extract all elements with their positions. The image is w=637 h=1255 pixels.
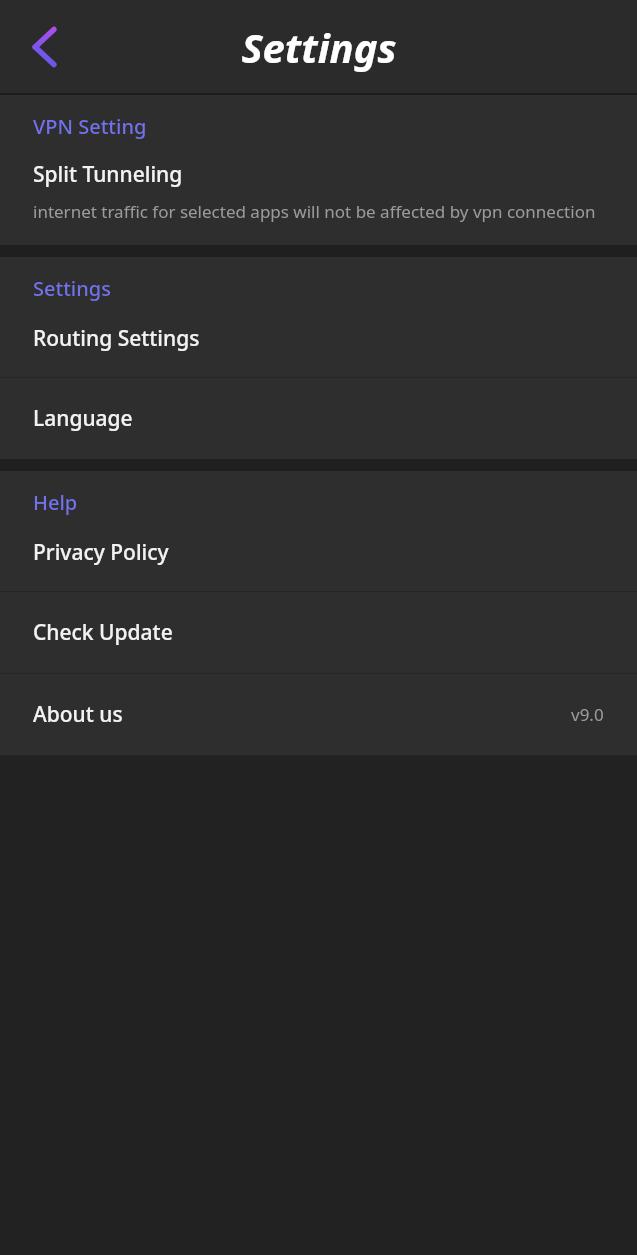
button[interactable]: Back: [18, 21, 70, 73]
staticText: Settings: [241, 20, 397, 74]
staticText: Privacy Policy: [33, 538, 169, 567]
staticText: internet traffic for selected apps will …: [33, 200, 596, 223]
staticText: Settings: [33, 275, 111, 302]
staticText: Split Tunneling: [33, 160, 183, 189]
button[interactable]: Split Tunneling: [0, 148, 637, 245]
staticText: VPN Setting: [33, 113, 147, 140]
button[interactable]: Language: [0, 378, 637, 459]
button[interactable]: About us: [0, 674, 637, 755]
button[interactable]: Privacy Policy: [0, 524, 637, 591]
staticText: Check Update: [33, 618, 173, 647]
staticText: Help: [33, 489, 78, 516]
staticText: v9.0: [571, 703, 604, 726]
button[interactable]: Routing Settings: [0, 310, 637, 377]
button[interactable]: Check Update: [0, 592, 637, 673]
staticText: Language: [33, 404, 133, 433]
staticText: Routing Settings: [33, 324, 200, 353]
staticText: About us: [33, 700, 123, 729]
